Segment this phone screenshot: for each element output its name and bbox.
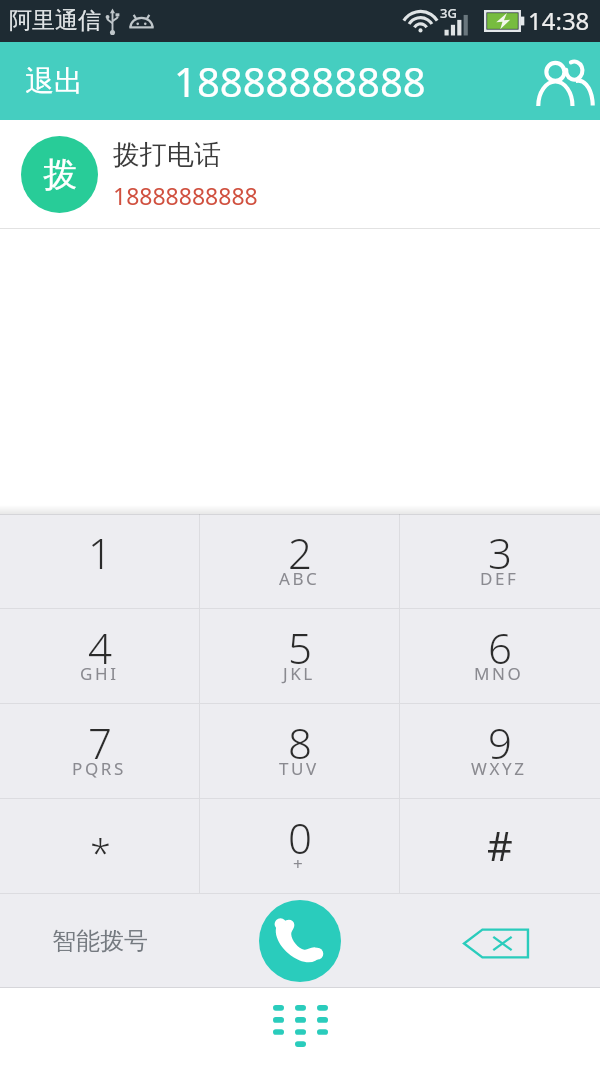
staticText: ABC	[279, 567, 320, 590]
staticText: 18888888888	[174, 54, 426, 108]
button[interactable]: 9	[400, 704, 600, 798]
button[interactable]: 8	[200, 704, 400, 798]
button[interactable]: *	[0, 799, 200, 893]
staticText: 智能拨号	[52, 926, 148, 956]
button[interactable]: 智能拨号	[0, 894, 200, 987]
staticText: 8	[288, 714, 312, 771]
staticText: 4	[88, 619, 112, 676]
button[interactable]: 退出	[0, 43, 108, 120]
button[interactable]: #	[400, 799, 600, 893]
staticText: 9	[488, 714, 512, 771]
staticText: 3	[488, 524, 512, 581]
staticText: 阿里通信	[9, 6, 101, 35]
button[interactable]: 3	[400, 514, 600, 608]
staticText: 7	[88, 714, 112, 771]
staticText: 0	[288, 809, 312, 866]
button[interactable]: 5	[200, 609, 400, 703]
button[interactable]: 6	[400, 609, 600, 703]
staticText: 6	[488, 619, 512, 676]
button[interactable]: 拨	[0, 120, 600, 228]
button[interactable]: 2	[200, 514, 400, 608]
staticText: #	[487, 818, 513, 872]
staticText: MNO	[474, 662, 524, 685]
staticText: DEF	[480, 567, 519, 590]
staticText: 5	[288, 619, 312, 676]
staticText: +	[293, 852, 306, 875]
staticText: JKL	[283, 662, 315, 685]
staticText: 18888888888	[113, 180, 258, 211]
staticText: GHI	[80, 662, 119, 685]
staticText: 3G	[440, 4, 457, 22]
button[interactable]: 7	[0, 704, 200, 798]
staticText: *	[90, 826, 111, 878]
button[interactable]: Dialpad	[263, 997, 338, 1059]
staticText: 拨打电话	[113, 138, 221, 172]
staticText: PQRS	[72, 757, 126, 780]
button[interactable]: Call	[259, 900, 341, 982]
button[interactable]: Delete	[400, 894, 600, 987]
staticText: 拨	[43, 153, 77, 196]
button[interactable]: 4	[0, 609, 200, 703]
staticText: 1	[88, 524, 112, 581]
staticText: TUV	[279, 757, 319, 780]
staticText: WXYZ	[471, 757, 527, 780]
button[interactable]: 1	[0, 514, 200, 608]
staticText: 14:38	[528, 4, 590, 37]
staticText: 退出	[25, 63, 83, 100]
button[interactable]: Contacts	[520, 45, 600, 117]
staticText: 2	[288, 524, 312, 581]
button[interactable]: 0	[200, 799, 400, 893]
